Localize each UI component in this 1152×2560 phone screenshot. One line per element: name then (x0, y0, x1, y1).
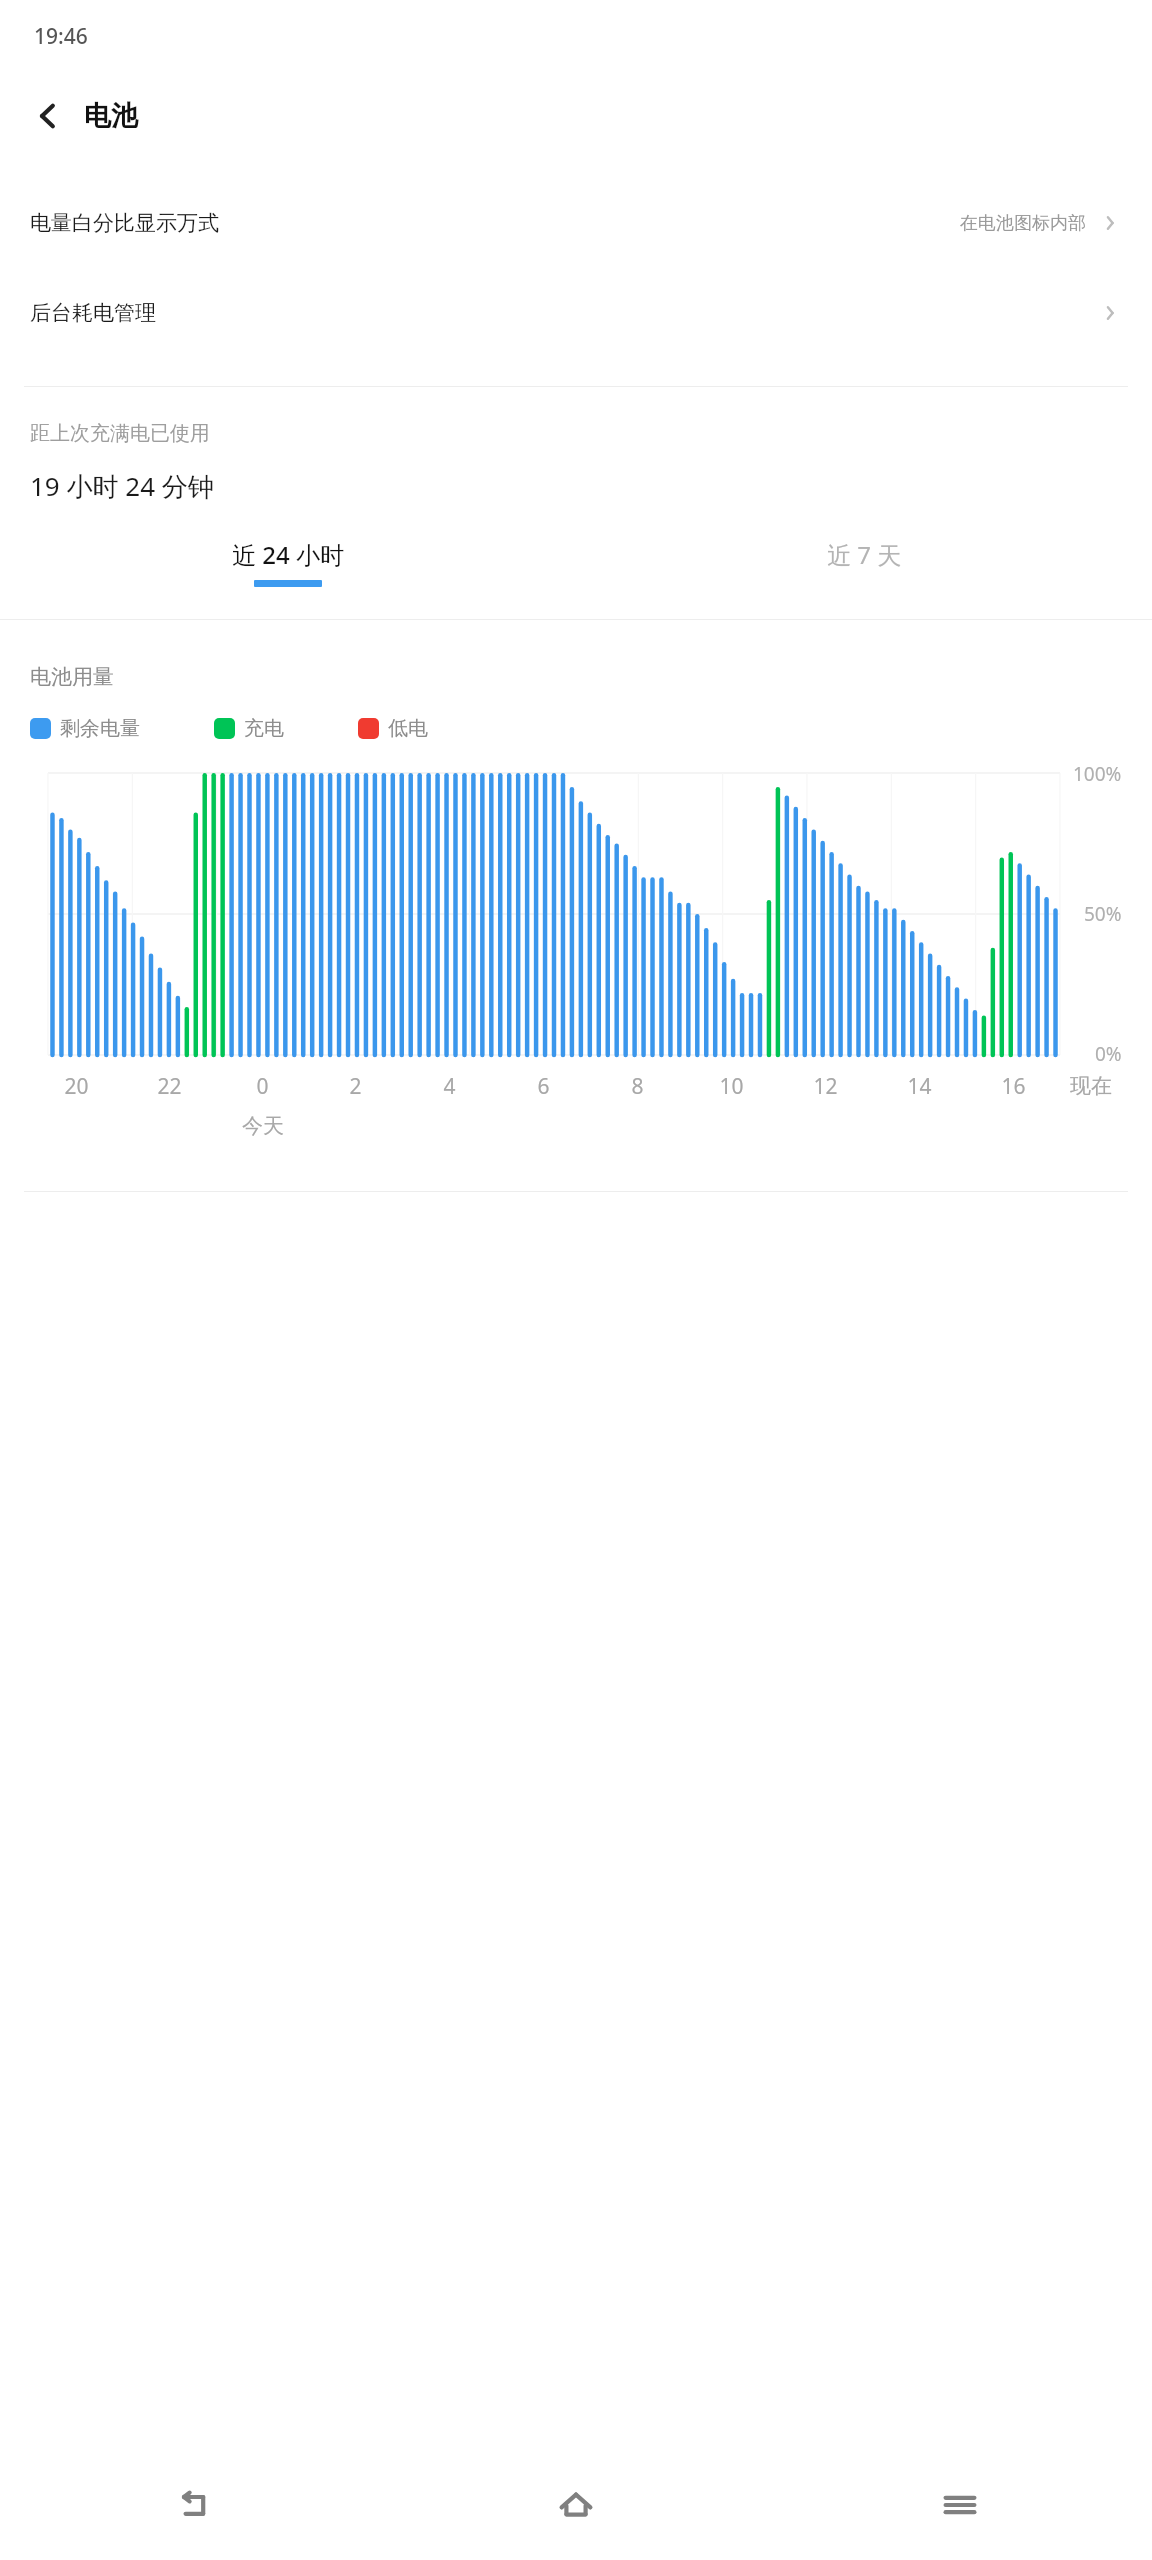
staticText: 19:46 (34, 22, 88, 51)
staticText: 低电 (388, 716, 428, 741)
staticText: 12 (813, 1072, 838, 1101)
button[interactable]: Recent apps (768, 2450, 1152, 2560)
staticText: 8 (631, 1072, 644, 1101)
staticText: 16 (1001, 1072, 1026, 1101)
button[interactable]: Home (384, 2450, 768, 2560)
staticText: 2 (349, 1072, 362, 1101)
staticText: 0 (256, 1072, 269, 1101)
staticText: 电池用量 (30, 664, 114, 690)
staticText: 22 (157, 1072, 182, 1101)
staticText: 4 (443, 1072, 456, 1101)
button[interactable]: Back (20, 88, 76, 144)
button[interactable]: 后台耗电管理 (0, 268, 1152, 358)
staticText: 充电 (244, 716, 284, 741)
staticText: 50% (1084, 901, 1122, 927)
staticText: 10 (719, 1072, 744, 1101)
staticText: 14 (907, 1072, 932, 1101)
staticText: 剩余电量 (60, 716, 140, 741)
staticText: 今天 (242, 1113, 284, 1139)
button[interactable]: 近 24 小时 (0, 538, 576, 587)
staticText: 20 (64, 1072, 89, 1101)
staticText: 6 (537, 1072, 550, 1101)
button[interactable]: Back (0, 2450, 384, 2560)
button[interactable]: 近 7 天 (576, 538, 1152, 587)
staticText: 0% (1095, 1041, 1122, 1067)
staticText: 19 小时 24 分钟 (30, 468, 214, 504)
staticText: 近 24 小时 (232, 538, 344, 571)
button[interactable]: 电量白分比显示万式 (0, 178, 1152, 268)
staticText: 100% (1073, 761, 1122, 787)
staticText: 现在 (1070, 1073, 1112, 1099)
staticText: 电池 (84, 99, 138, 133)
staticText: 在电池图标内部 (960, 212, 1086, 235)
staticText: 距上次充满电已使用 (30, 421, 210, 446)
staticText: 后台耗电管理 (30, 300, 156, 326)
staticText: 近 7 天 (827, 538, 902, 571)
staticText: 电量白分比显示万式 (30, 210, 219, 236)
